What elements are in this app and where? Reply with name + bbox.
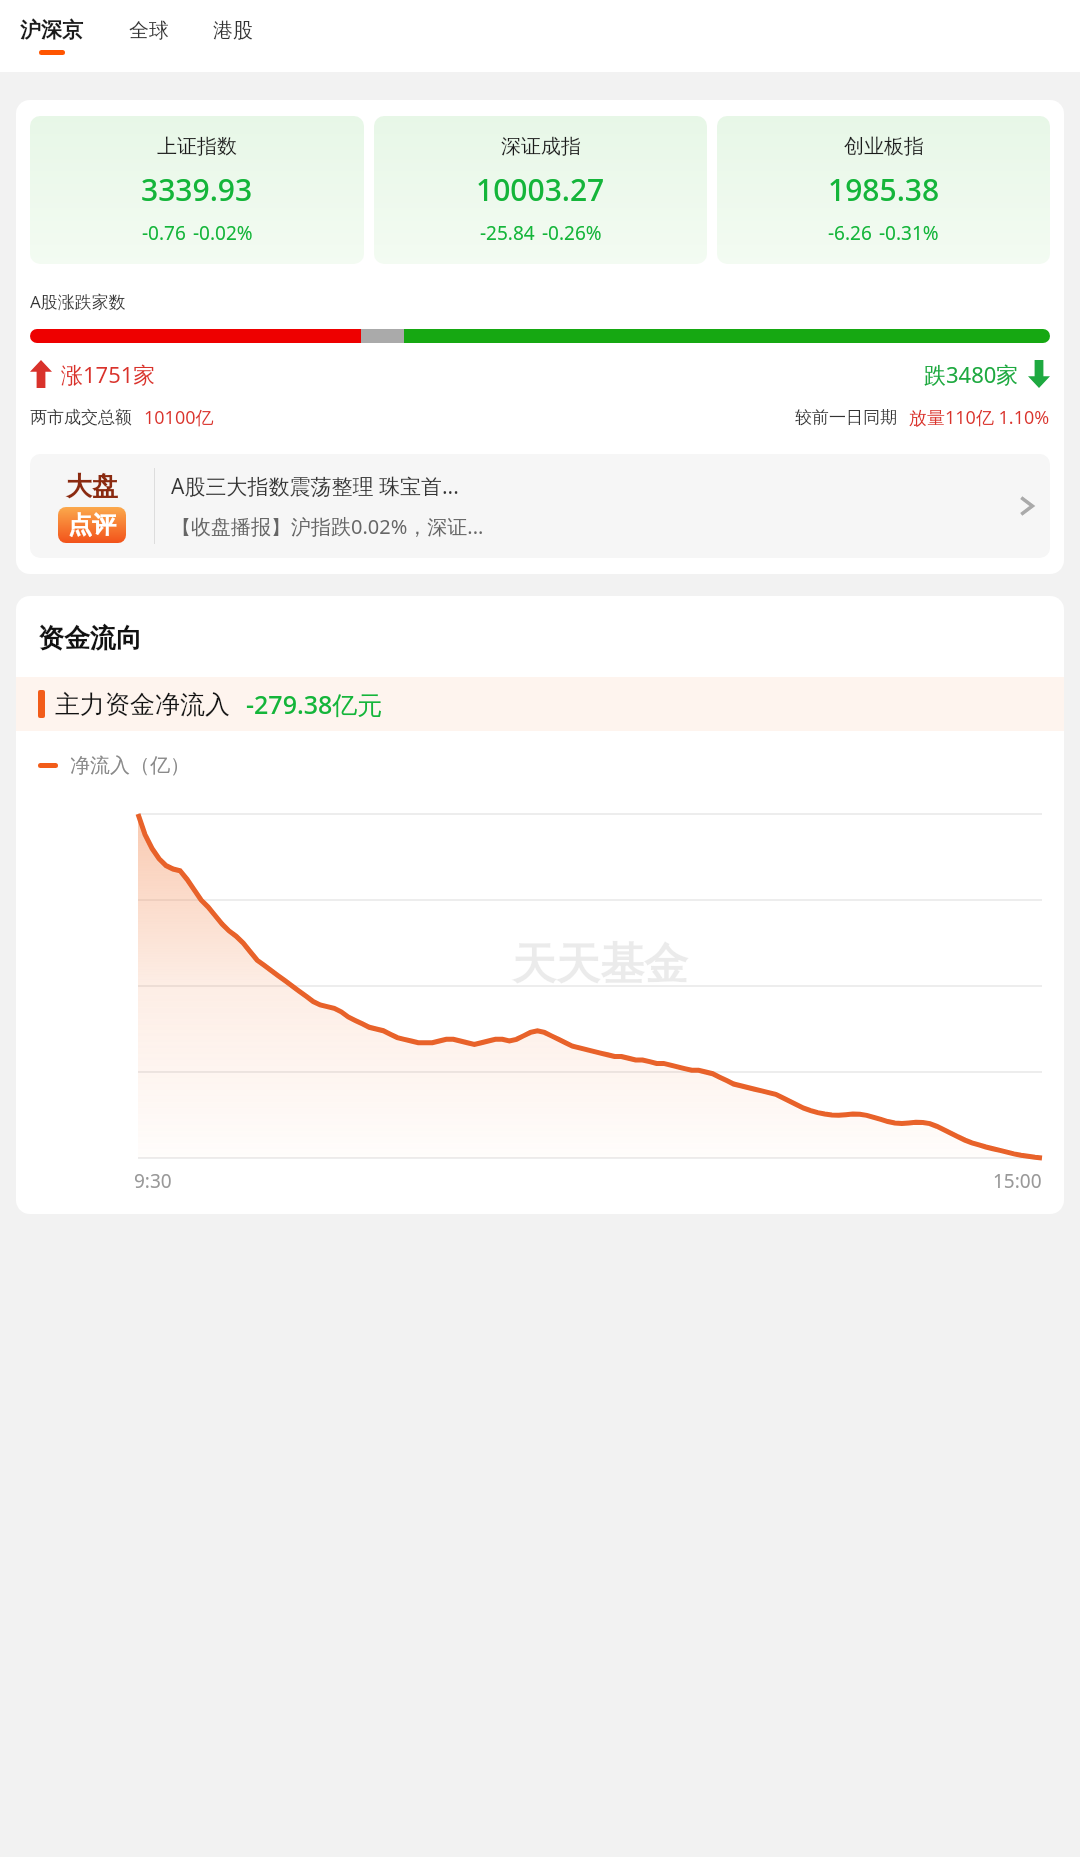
staticText: -25.84 [480,220,535,246]
staticText: 10100亿 [144,405,214,430]
staticText: -0.31% [879,220,939,246]
button[interactable]: 大盘 [30,454,1050,558]
staticText: A股涨跌家数 [30,290,126,313]
staticText: 10003.27 [476,169,605,210]
staticText: 沪深京 [20,17,83,43]
staticText: 较前一日同期 [795,407,897,428]
button[interactable]: 主力资金净流入 [16,677,1064,731]
staticText: -279.38亿元 [246,687,383,721]
staticText: 放量110亿 1.10% [909,405,1050,430]
staticText: 主力资金净流入 [55,689,230,720]
staticText: 上证指数 [157,134,237,159]
staticText: 15:00 [993,1168,1042,1194]
staticText: 1985.38 [828,169,940,210]
staticText: -0.02% [193,220,253,246]
staticText: 涨1751家 [61,359,156,389]
staticText: 【收盘播报】沪指跌0.02%，深证... [171,513,484,540]
button[interactable]: 沪深京 [18,17,85,55]
staticText: -6.26 [828,220,872,246]
staticText: 9:30 [134,1168,172,1194]
button[interactable]: 创业板指 [717,116,1050,264]
staticText: 3339.93 [141,169,253,210]
button[interactable]: 上证指数 [30,116,364,264]
staticText: 跌3480家 [924,359,1019,389]
staticText: 深证成指 [501,134,581,159]
other: More [1018,490,1036,522]
staticText: 点评 [68,510,116,540]
staticText: 净流入（亿） [70,753,190,778]
button[interactable]: 港股 [213,18,253,55]
staticText: -0.76 [142,220,186,246]
staticText: 创业板指 [844,134,924,159]
staticText: 资金流向 [38,622,142,655]
staticText: 港股 [213,18,253,43]
staticText: 天天基金 [512,937,688,992]
button[interactable]: 深证成指 [374,116,707,264]
staticText: 大盘 [66,470,118,503]
staticText: 全球 [129,18,169,43]
button[interactable]: 全球 [129,18,169,55]
staticText: -0.26% [542,220,602,246]
staticText: 两市成交总额 [30,407,132,428]
staticText: A股三大指数震荡整理 珠宝首... [171,472,459,501]
